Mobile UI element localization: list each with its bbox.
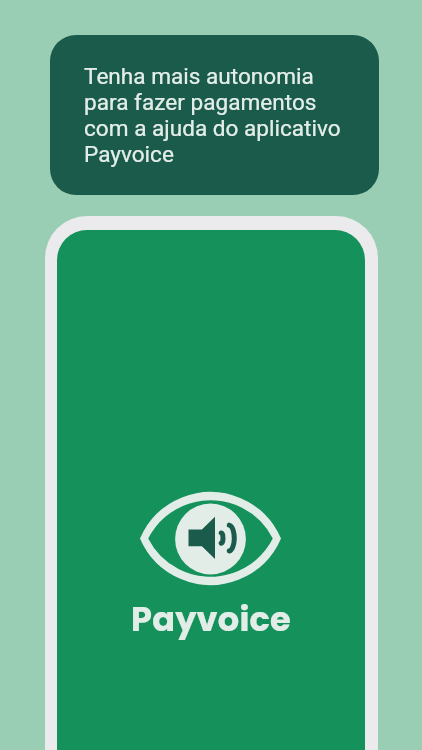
button[interactable]: Tenha mais autonomia para fazer pagament… <box>50 35 379 195</box>
staticText: Payvoice <box>57 596 365 643</box>
other: Payvoice logo <box>140 492 281 585</box>
staticText: Tenha mais autonomia para fazer pagament… <box>84 63 341 167</box>
